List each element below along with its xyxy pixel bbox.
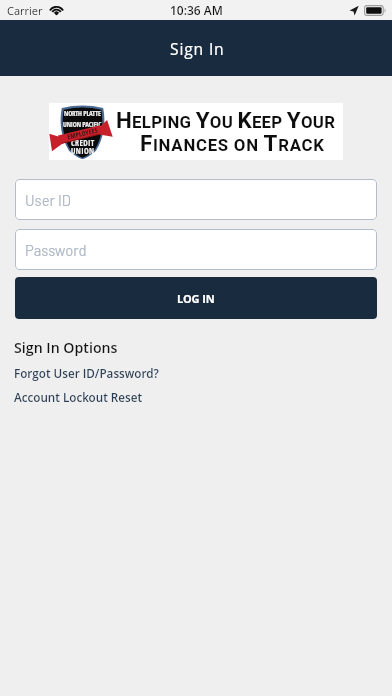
staticText: CREDIT bbox=[71, 137, 95, 148]
staticText: LOG IN bbox=[177, 291, 215, 306]
staticText: NORTH PLATTE bbox=[64, 109, 101, 118]
staticText: Carrier bbox=[7, 3, 43, 18]
staticText: UNION bbox=[71, 145, 95, 156]
staticText: HELPING YOU KEEP YOUR bbox=[116, 107, 336, 133]
button[interactable]: User ID bbox=[15, 179, 377, 220]
staticText: EMPLOYEES bbox=[66, 125, 99, 141]
button[interactable]: LOG IN bbox=[15, 277, 377, 319]
staticText: Sign In Options bbox=[14, 338, 118, 357]
staticText: 10:36 AM bbox=[170, 2, 223, 18]
staticText: Password bbox=[25, 241, 87, 259]
staticText: Forgot User ID/Password? bbox=[14, 365, 159, 381]
button[interactable]: Account Lockout Reset bbox=[0, 388, 392, 406]
button[interactable]: Forgot User ID/Password? bbox=[0, 364, 392, 382]
staticText: UNION PACIFIC bbox=[63, 120, 102, 129]
staticText: Account Lockout Reset bbox=[14, 389, 143, 405]
staticText: Sign In bbox=[170, 38, 225, 59]
staticText: FINANCES ON TRACK bbox=[140, 130, 325, 156]
staticText: User ID bbox=[25, 191, 71, 209]
button[interactable]: Password bbox=[15, 229, 377, 270]
